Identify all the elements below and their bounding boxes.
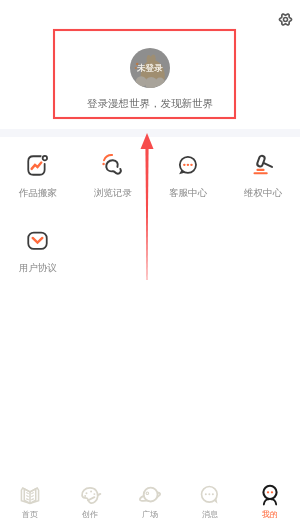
button[interactable]: 创作 [60, 477, 120, 520]
staticText: 消息 [202, 509, 218, 519]
button[interactable]: 作品搬家 [0, 155, 75, 199]
button[interactable]: 客服中心 [150, 155, 225, 199]
staticText: 用户协议 [19, 262, 57, 274]
button[interactable]: 消息 [180, 477, 240, 520]
button[interactable]: 维权中心 [225, 155, 300, 199]
staticText: 客服中心 [169, 187, 207, 199]
staticText: 创作 [82, 509, 98, 519]
staticText: 广场 [142, 509, 158, 519]
button[interactable]: 浏览记录 [75, 155, 150, 199]
staticText: 未登录 [137, 63, 163, 74]
staticText: 浏览记录 [94, 187, 132, 199]
button[interactable]: 首页 [0, 477, 60, 520]
button[interactable]: 广场 [120, 477, 180, 520]
staticText: 作品搬家 [19, 187, 57, 199]
staticText: 维权中心 [244, 187, 282, 199]
staticText: 我的 [262, 509, 278, 519]
button[interactable]: 我的 [240, 477, 300, 520]
staticText: 首页 [22, 509, 38, 519]
staticText: 登录漫想世界，发现新世界 [87, 97, 213, 110]
button[interactable]: 未登录 [0, 48, 300, 110]
button[interactable]: 用户协议 [0, 230, 75, 274]
button[interactable]: Settings [274, 8, 297, 31]
